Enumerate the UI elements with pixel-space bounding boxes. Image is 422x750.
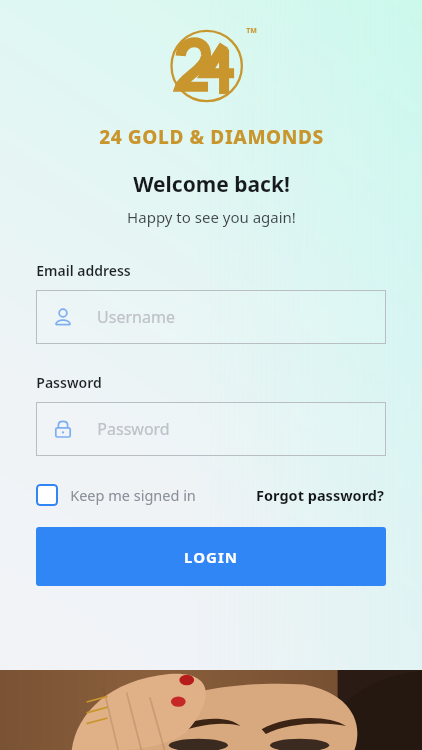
staticText: Email address <box>36 261 131 280</box>
staticText: Welcome back! <box>133 170 290 199</box>
button[interactable]: Username <box>36 290 386 344</box>
button[interactable]: Keep me signed in <box>36 482 196 508</box>
button[interactable]: LOGIN <box>36 527 386 586</box>
button[interactable]: Password <box>36 402 386 456</box>
staticText: LOGIN <box>184 547 238 567</box>
staticText: Happy to see you again! <box>127 207 296 227</box>
staticText: 24 GOLD & DIAMONDS <box>99 124 324 150</box>
staticText: Password <box>36 373 102 392</box>
staticText: Keep me signed in <box>70 485 196 505</box>
staticText: Forgot password? <box>256 485 384 505</box>
button[interactable]: Forgot password? <box>254 482 386 508</box>
staticText: TM <box>246 26 257 36</box>
staticText: Username <box>97 306 175 328</box>
staticText: Password <box>97 418 170 440</box>
